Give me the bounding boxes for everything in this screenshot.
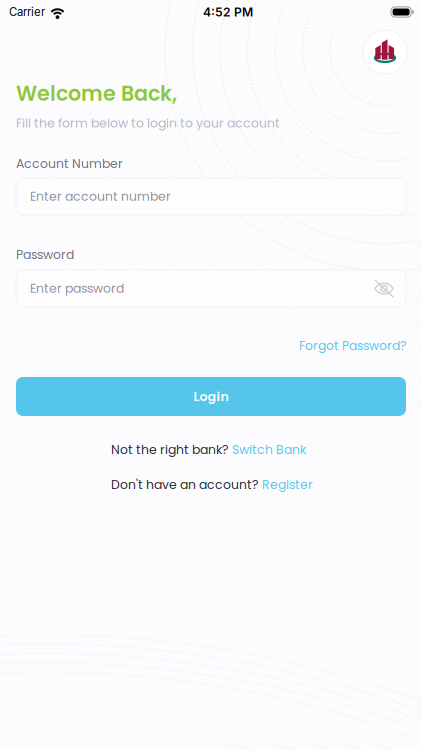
staticText: Not the right bank? — [111, 441, 228, 458]
staticText: Fill the form below to login to your acc… — [16, 114, 280, 132]
button[interactable]: Forgot Password? — [299, 337, 406, 354]
staticText: Carrier — [9, 5, 45, 19]
staticText: 4:52 PM — [203, 5, 253, 19]
staticText: Enter account number — [30, 188, 171, 205]
staticText: Login — [193, 388, 228, 405]
staticText: Switch Bank — [232, 441, 306, 458]
staticText: Enter password — [30, 280, 124, 297]
staticText: Don't have an account? — [111, 476, 258, 493]
staticText: Welcome Back, — [16, 79, 177, 108]
staticText: Register — [262, 476, 313, 493]
staticText: Password — [16, 246, 74, 263]
button[interactable]: Login — [16, 377, 406, 416]
staticText: Forgot Password? — [299, 337, 406, 354]
staticText: Account Number — [16, 155, 123, 172]
button[interactable]: Not the right bank? — [111, 441, 306, 458]
button[interactable]: Don't have an account? — [111, 476, 313, 493]
